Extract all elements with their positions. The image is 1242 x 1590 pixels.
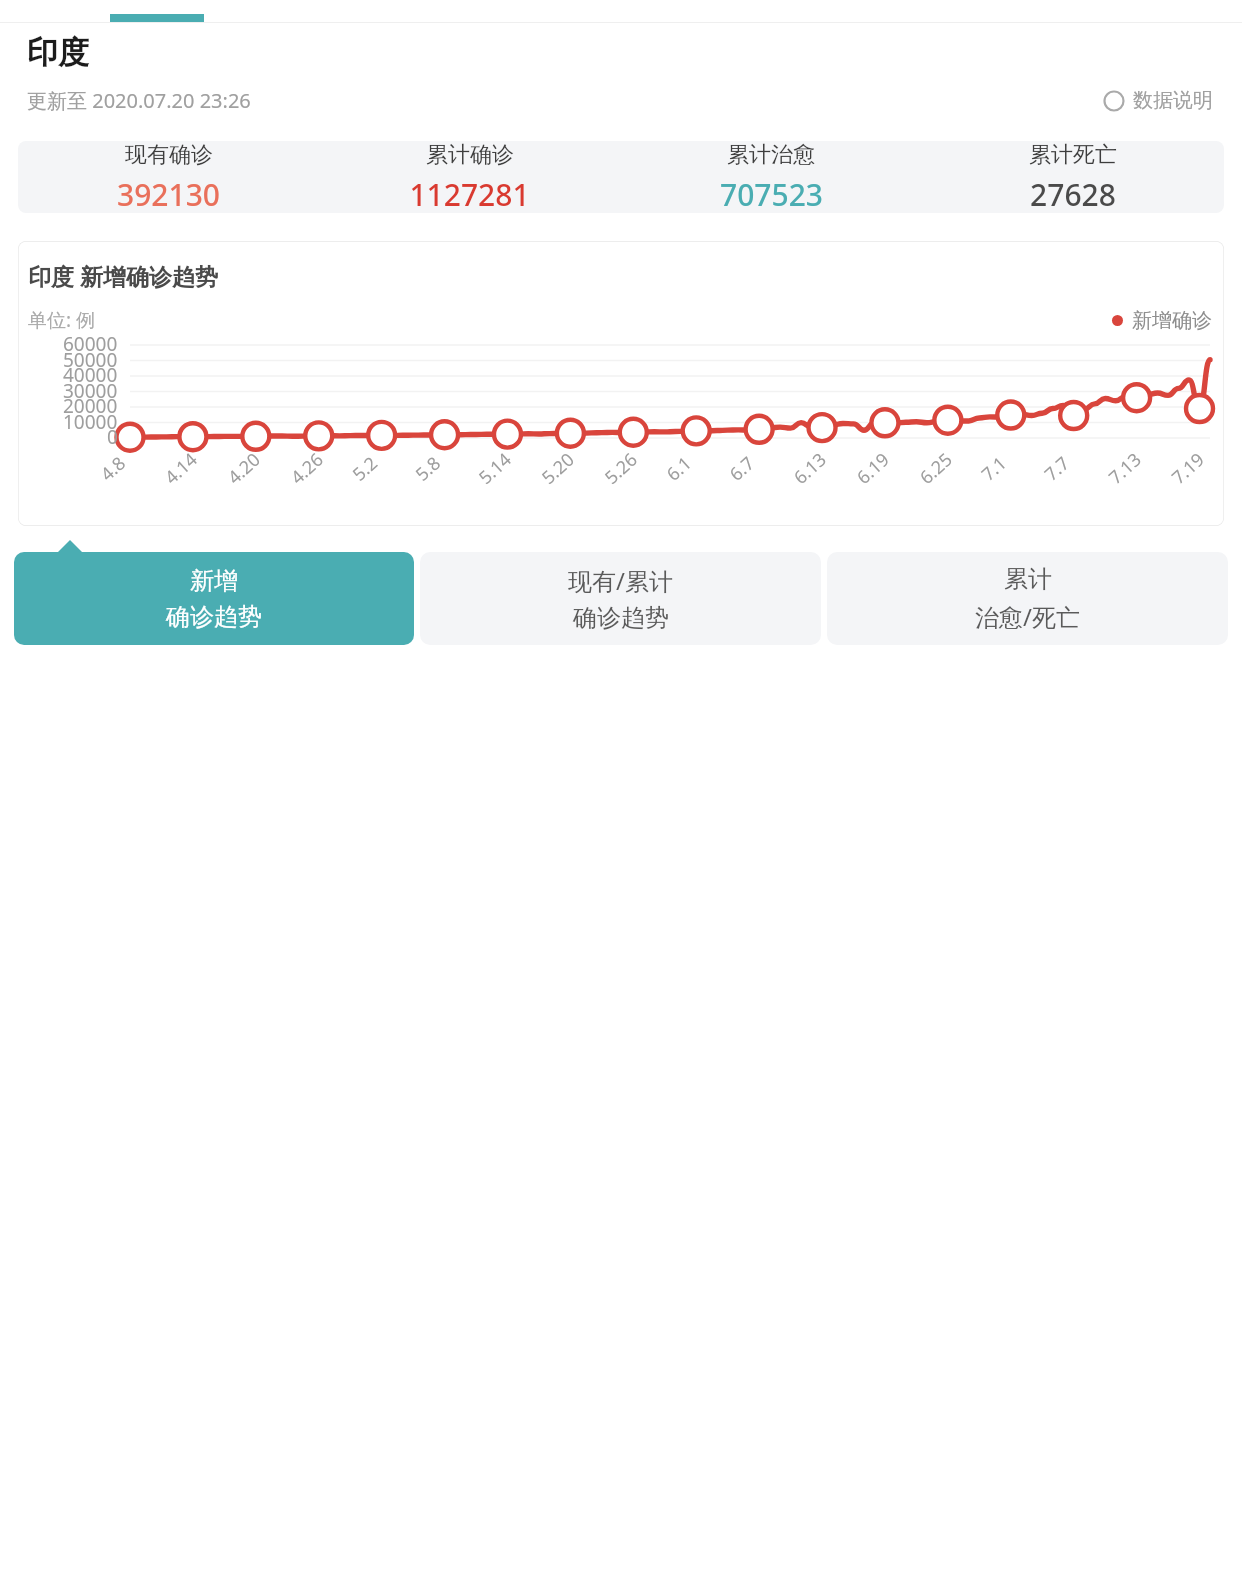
staticText: 累计确诊 (426, 141, 514, 169)
staticText: 30000 (63, 378, 118, 404)
staticText: 5.20 (536, 447, 580, 490)
staticText: 累计死亡 (1029, 141, 1117, 169)
staticText: 60000 (63, 331, 118, 357)
staticText: 707523 (720, 174, 823, 213)
staticText: 20000 (63, 393, 118, 419)
staticText: 数据说明 (1133, 88, 1213, 113)
button[interactable]: 印度 新增确诊趋势 (18, 241, 1224, 526)
staticText: 确诊趋势 (573, 603, 669, 633)
button[interactable]: 累计死亡 (922, 141, 1224, 213)
staticText: 6.7 (724, 450, 760, 486)
staticText: 新增 (190, 566, 238, 596)
staticText: 5.26 (599, 447, 643, 490)
staticText: 7.13 (1103, 447, 1147, 490)
staticText: 现有确诊 (125, 141, 213, 169)
staticText: 现有/累计 (568, 564, 673, 597)
button[interactable]: 累计确诊 (319, 141, 620, 213)
button[interactable]: 新增 (14, 552, 414, 645)
staticText: 4.26 (285, 447, 329, 490)
staticText: 更新至 2020.07.20 23:26 (27, 87, 251, 114)
staticText: 6.13 (788, 447, 832, 490)
button[interactable]: 累计治愈 (620, 141, 922, 213)
staticText: 7.1 (976, 450, 1012, 486)
staticText: 确诊趋势 (166, 602, 262, 632)
button[interactable]: 数据说明 (1101, 84, 1215, 117)
staticText: 6.19 (851, 447, 895, 490)
staticText: 印度 新增确诊趋势 (28, 260, 218, 291)
button[interactable]: 现有确诊 (18, 141, 1224, 213)
button[interactable]: 累计 (827, 552, 1228, 645)
staticText: 392130 (117, 174, 220, 213)
staticText: 印度 (27, 33, 89, 72)
staticText: 累计治愈 (727, 141, 815, 169)
staticText: 6.25 (914, 447, 958, 490)
staticText: 50000 (63, 347, 118, 373)
staticText: 40000 (63, 362, 118, 388)
staticText: 累计 (1004, 564, 1052, 594)
staticText: 7.7 (1039, 450, 1075, 486)
staticText: 7.19 (1166, 447, 1210, 490)
staticText: 27628 (1030, 174, 1116, 213)
staticText: 5.2 (347, 450, 383, 486)
staticText: 4.20 (222, 447, 266, 490)
staticText: 单位: 例 (28, 307, 96, 333)
staticText: 5.8 (410, 450, 446, 486)
staticText: 4.14 (159, 447, 203, 490)
staticText: 新增确诊 (1132, 308, 1212, 333)
button[interactable]: 现有/累计 (420, 552, 821, 645)
button[interactable]: 现有确诊 (18, 141, 319, 213)
staticText: 1127281 (409, 174, 530, 213)
staticText: 治愈/死亡 (975, 600, 1080, 633)
staticText: 10000 (63, 409, 118, 435)
staticText: 4.8 (95, 450, 131, 486)
staticText: 0 (107, 424, 118, 450)
staticText: 5.14 (473, 447, 517, 490)
staticText: 6.1 (661, 450, 697, 486)
